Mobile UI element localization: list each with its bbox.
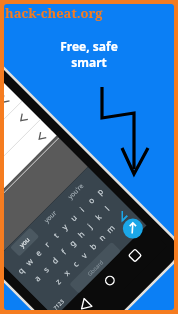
staticText: hack-cheat.org — [5, 4, 103, 22]
staticText: Free, safe smart — [60, 38, 118, 71]
